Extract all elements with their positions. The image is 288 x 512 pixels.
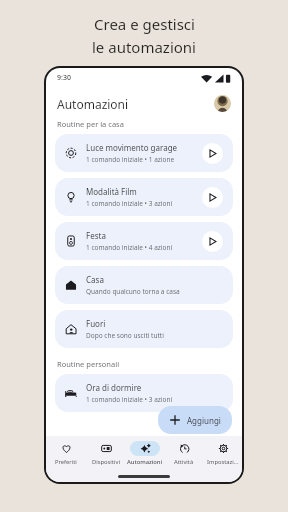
staticText: Dopo che sono usciti tutti — [86, 331, 164, 340]
staticText: Quando qualcuno torna a casa — [86, 287, 180, 296]
button[interactable]: Casa — [55, 266, 233, 304]
staticText: Festa — [86, 230, 106, 241]
staticText: Routine personali — [57, 359, 120, 369]
staticText: Routine per la casa — [57, 119, 124, 129]
staticText: 1 comando iniziale • 3 azioni — [86, 395, 173, 404]
button[interactable]: Fuori — [55, 310, 233, 348]
staticText: Aggiungi — [187, 415, 221, 426]
staticText: Preferiti — [55, 458, 77, 466]
button[interactable]: Attività — [164, 439, 203, 468]
button[interactable]: Ora di dormire — [55, 374, 233, 412]
button[interactable]: Luce movimento garage — [55, 134, 233, 172]
staticText: Attività — [174, 458, 194, 466]
staticText: 1 comando iniziale • 1 azione — [86, 155, 175, 164]
button[interactable]: Aggiungi — [158, 406, 232, 434]
staticText: Casa — [86, 274, 104, 285]
button[interactable]: Dispositivi — [86, 439, 125, 468]
staticText: Ora di dormire — [86, 382, 142, 393]
staticText: 1 comando iniziale • 3 azioni — [86, 199, 173, 208]
button[interactable]: Play routine — [202, 187, 223, 208]
button[interactable]: Festa — [55, 222, 233, 260]
button[interactable]: Account — [214, 95, 231, 112]
button[interactable]: Automazioni — [125, 439, 164, 468]
staticText: le automazioni — [92, 37, 196, 57]
button[interactable]: Impostazi... — [203, 439, 242, 468]
staticText: 1 comando iniziale • 4 azioni — [86, 243, 173, 252]
staticText: Automazioni — [57, 96, 129, 112]
button[interactable]: Play routine — [202, 231, 223, 252]
staticText: Automazioni — [127, 458, 163, 466]
staticText: Modalità Film — [86, 186, 137, 197]
button[interactable]: Preferiti — [46, 439, 86, 468]
button[interactable]: Modalità Film — [55, 178, 233, 216]
staticText: Fuori — [86, 318, 106, 329]
staticText: 9:30 — [57, 73, 71, 83]
button[interactable]: Play routine — [202, 143, 223, 164]
staticText: Crea e gestisci — [94, 14, 195, 34]
staticText: Impostazi... — [207, 458, 239, 466]
staticText: Dispositivi — [92, 458, 120, 466]
staticText: Luce movimento garage — [86, 142, 178, 153]
